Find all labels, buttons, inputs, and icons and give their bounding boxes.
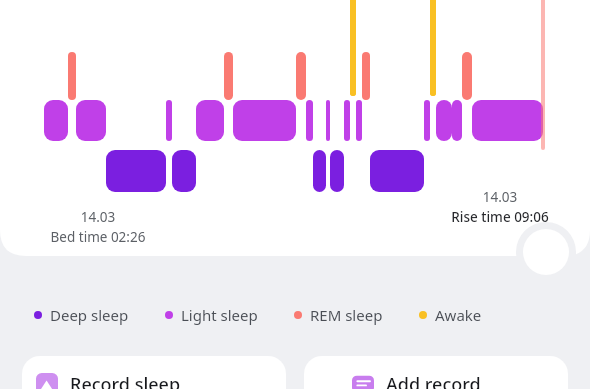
button[interactable]: REM sleep — [294, 305, 383, 325]
staticText: Deep sleep — [50, 305, 129, 325]
button[interactable]: Add record — [304, 356, 568, 389]
staticText: Rise time 09:06 — [434, 208, 566, 226]
button[interactable]: Record sleep — [22, 356, 286, 389]
staticText: Light sleep — [181, 305, 258, 325]
staticText: REM sleep — [310, 305, 383, 325]
staticText: Bed time 02:26 — [36, 228, 160, 246]
staticText: 14.03 — [434, 188, 566, 206]
staticText: Record sleep — [70, 372, 181, 389]
staticText: 14.03 — [36, 208, 160, 226]
staticText: Awake — [435, 305, 482, 325]
staticText: Add record — [386, 372, 481, 389]
button[interactable]: Light sleep — [165, 305, 258, 325]
button[interactable]: Awake — [419, 305, 482, 325]
button[interactable]: Deep sleep — [34, 305, 129, 325]
